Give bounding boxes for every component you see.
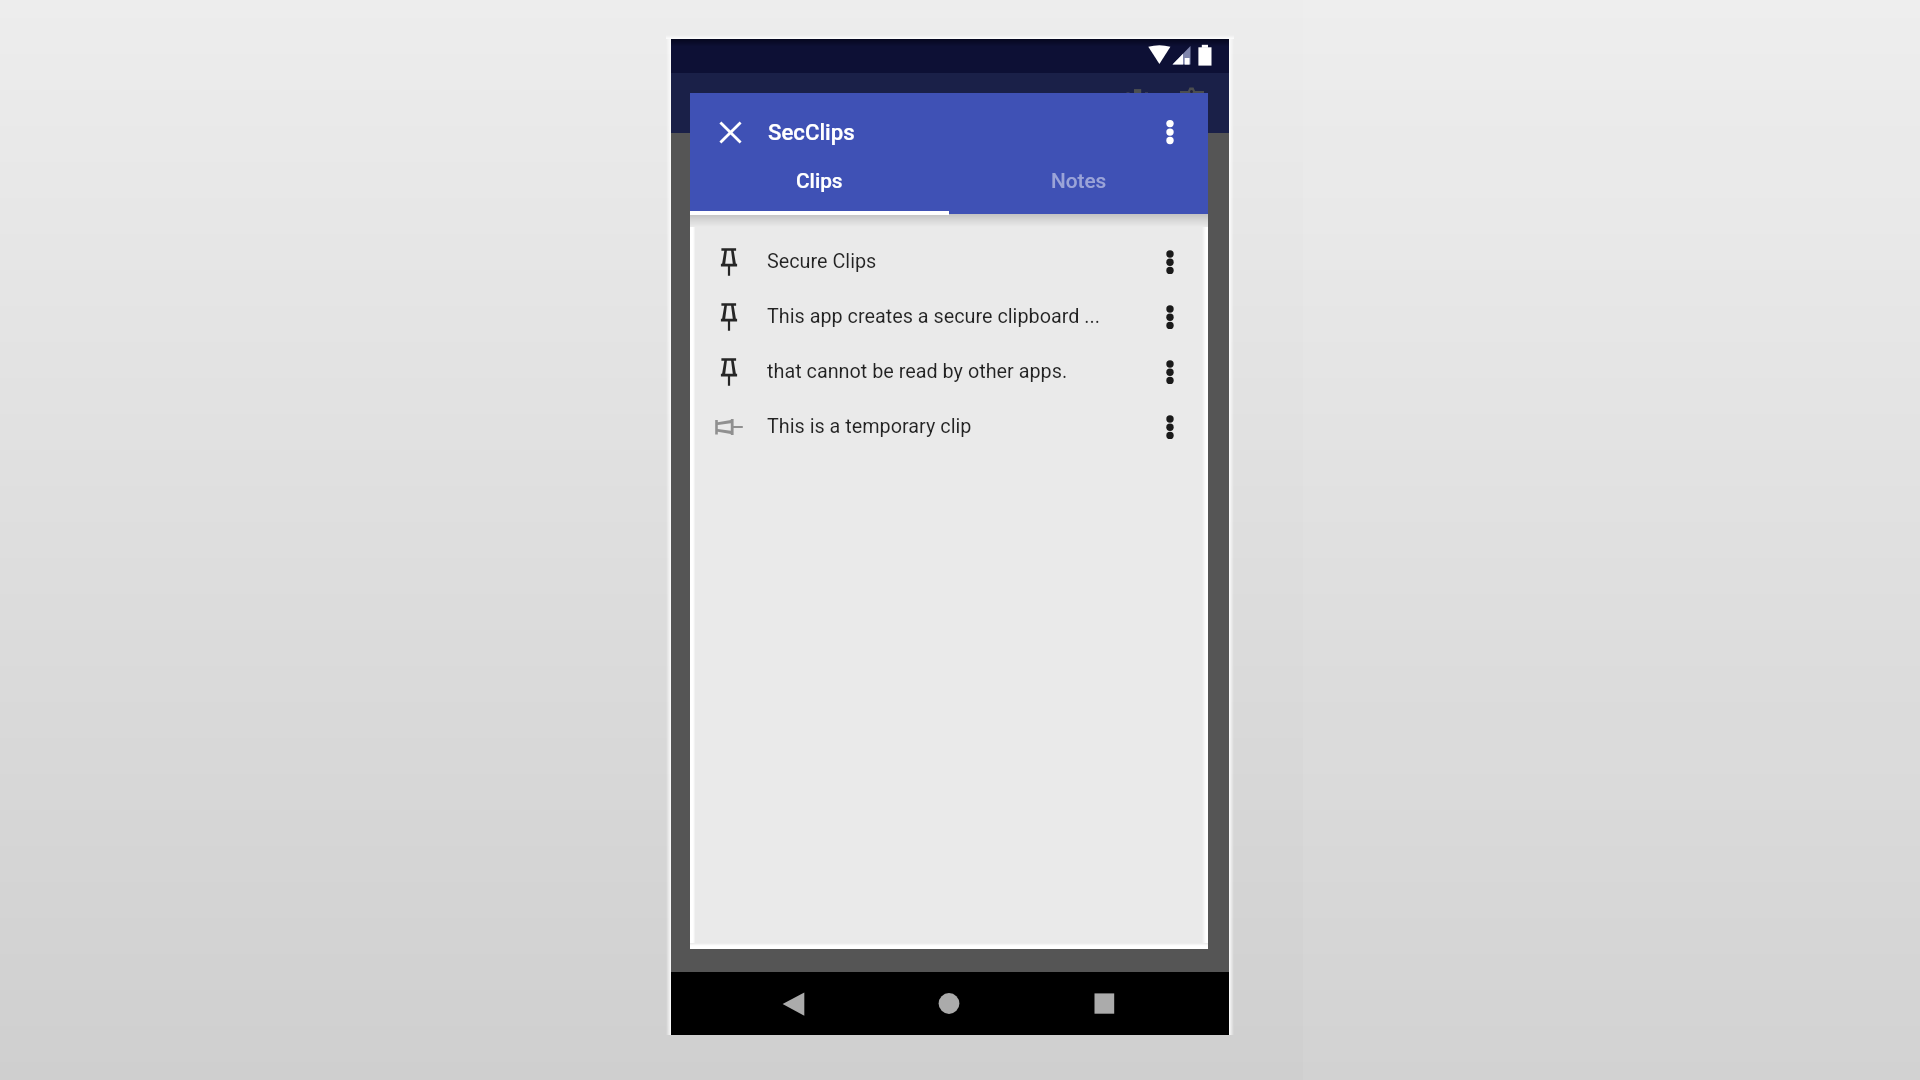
button[interactable]: that cannot be read by other apps. — [690, 344, 1208, 399]
staticText: that cannot be read by other apps. — [767, 360, 1068, 383]
button[interactable]: This app creates a secure clipboard ... — [690, 289, 1208, 344]
button[interactable]: Notes — [949, 155, 1208, 207]
button[interactable]: Item options — [1153, 410, 1187, 444]
button[interactable]: Clips — [690, 155, 949, 207]
button[interactable]: Secure Clips — [690, 234, 1208, 289]
button[interactable]: More options — [1153, 115, 1187, 149]
button[interactable]: Item options — [1153, 355, 1187, 389]
staticText: Clips — [796, 169, 843, 193]
staticText: Secure Clips — [767, 250, 877, 273]
staticText: SecClips — [768, 119, 855, 145]
button[interactable]: Close — [713, 115, 747, 149]
staticText: This is a temporary clip — [767, 415, 972, 438]
button[interactable]: Item options — [1153, 300, 1187, 334]
staticText: This app creates a secure clipboard ... — [767, 305, 1100, 328]
button[interactable]: This is a temporary clip — [690, 399, 1208, 454]
staticText: Notes — [1051, 169, 1107, 193]
button[interactable]: Item options — [1153, 245, 1187, 279]
